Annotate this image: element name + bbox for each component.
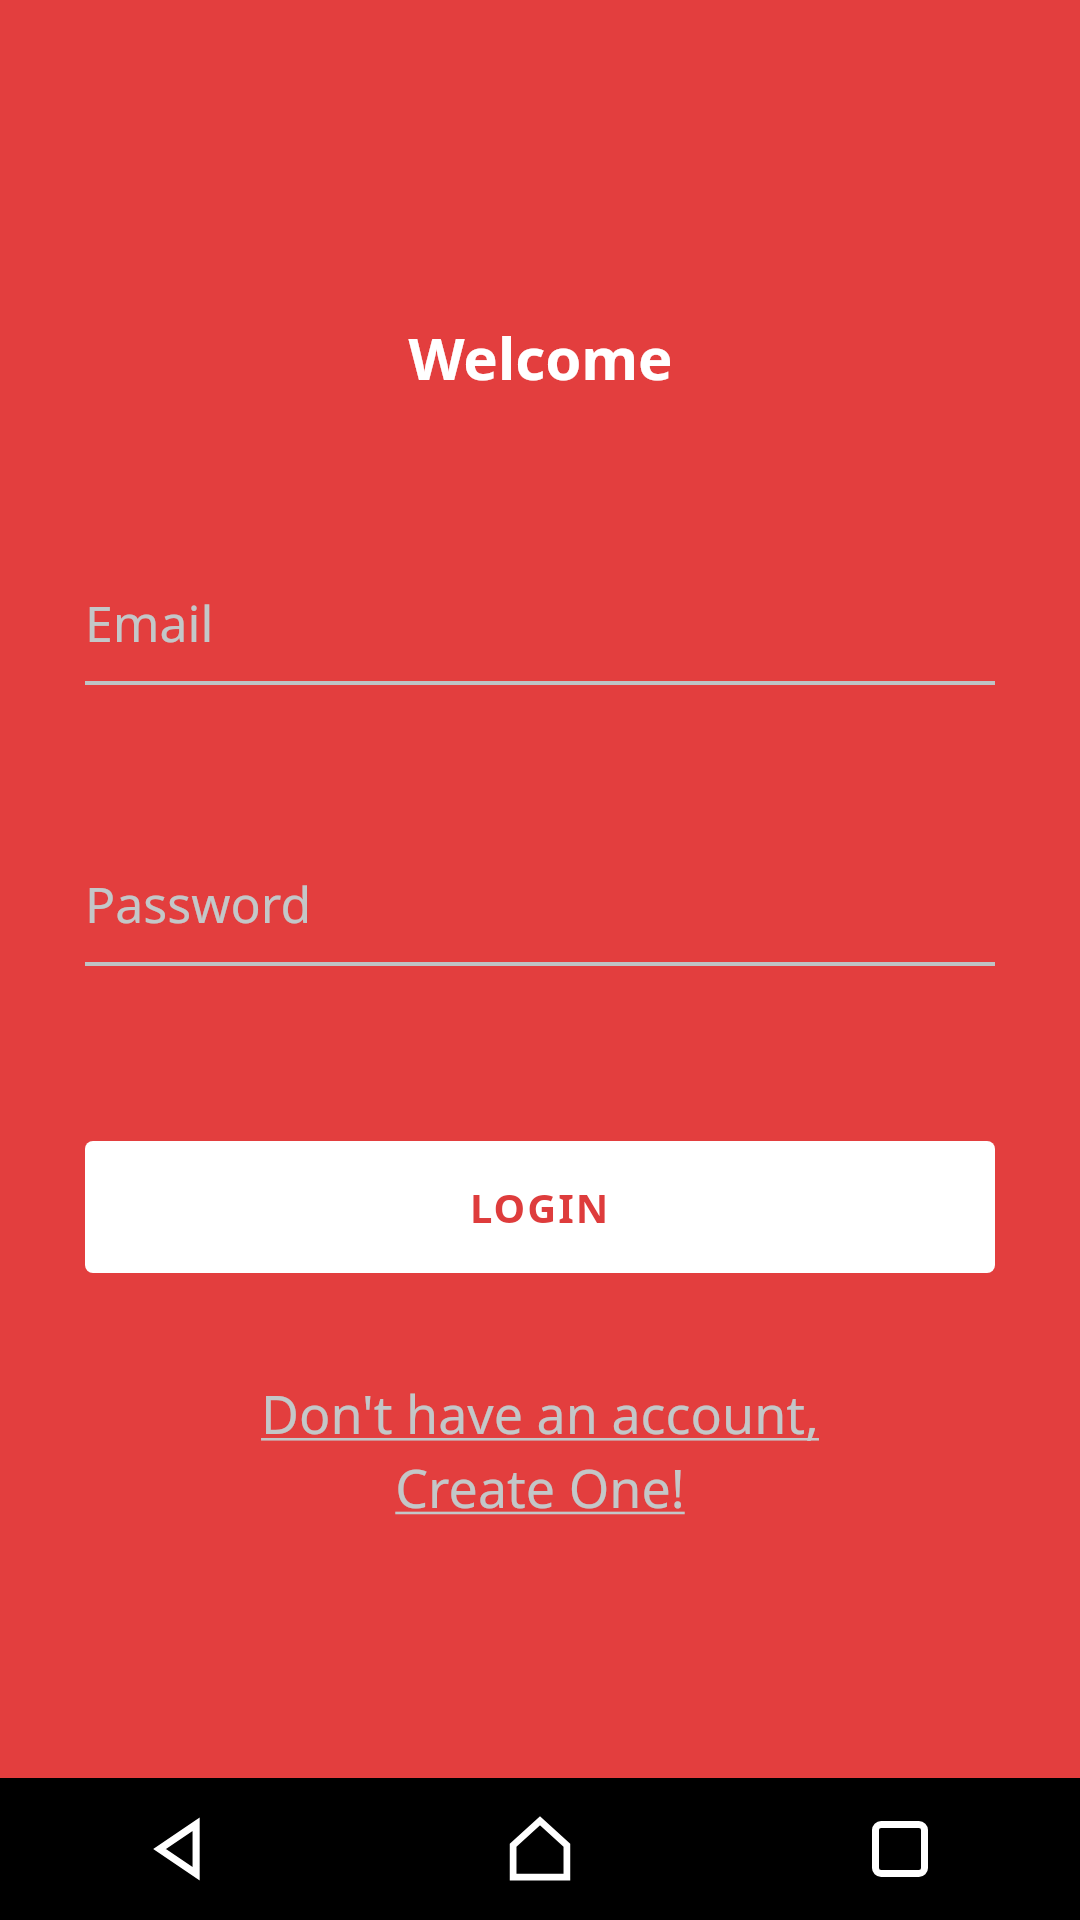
button[interactable]: Home xyxy=(360,1778,720,1920)
button[interactable]: Email xyxy=(85,579,995,685)
button[interactable]: Don't have an account, Create One! xyxy=(85,1378,995,1523)
button[interactable]: LOGIN xyxy=(85,1141,995,1273)
staticText: Welcome xyxy=(408,318,673,397)
staticText: LOGIN xyxy=(470,1180,611,1234)
staticText: Password xyxy=(85,870,312,938)
button[interactable]: Password xyxy=(85,860,995,966)
staticText: Don't have an account, Create One! xyxy=(261,1378,819,1523)
button[interactable]: Recent apps xyxy=(720,1778,1080,1920)
staticText: Email xyxy=(85,589,214,657)
button[interactable]: Back xyxy=(0,1778,360,1920)
